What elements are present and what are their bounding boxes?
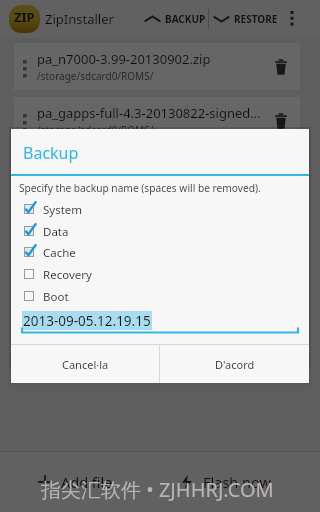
- button[interactable]: Flash now: [150, 452, 300, 512]
- staticText: /storage/sdcard0/ROMS/: [37, 69, 154, 83]
- staticText: System: [43, 202, 83, 218]
- staticText: Cancel·la: [62, 357, 109, 372]
- button[interactable]: pa_gapps-full-4.3-20130822-signed…: [14, 97, 300, 144]
- staticText: Specify the backup name (spaces will be …: [19, 181, 261, 195]
- button[interactable]: Boot: [11, 289, 309, 305]
- button[interactable]: Delete: [262, 43, 300, 90]
- button[interactable]: RESTORE: [209, 0, 282, 38]
- button[interactable]: BACKUP: [138, 0, 208, 38]
- button[interactable]: Data: [11, 224, 309, 240]
- staticText: BACKUP: [165, 12, 206, 26]
- staticText: ZipInstaller: [45, 10, 114, 28]
- staticText: Data: [43, 224, 69, 240]
- button[interactable]: Delete: [262, 97, 300, 144]
- staticText: /storage/sdcard0/ROMS/: [37, 123, 154, 137]
- staticText: D'acord: [215, 357, 255, 372]
- staticText: 指尖汇软件 • ZJHHRJ.COM: [41, 476, 274, 503]
- staticText: Add file: [61, 472, 113, 492]
- button[interactable]: Add file: [0, 452, 150, 512]
- staticText: pa_n7000-3.99-20130902.zip: [37, 50, 211, 68]
- button[interactable]: pa_n7000-3.99-20130902.zip: [14, 43, 300, 90]
- button[interactable]: System: [11, 202, 309, 218]
- button[interactable]: Cache: [11, 245, 309, 261]
- button[interactable]: More options: [282, 0, 302, 38]
- button[interactable]: D'acord: [160, 345, 309, 383]
- staticText: Recovery: [43, 267, 92, 283]
- staticText: RESTORE: [234, 12, 278, 26]
- staticText: ZIP: [14, 8, 35, 26]
- staticText: Boot: [43, 289, 69, 305]
- staticText: 2013-09-05.12.19.15: [23, 312, 151, 330]
- staticText: pa_gapps-full-4.3-20130822-signed…: [37, 104, 261, 122]
- staticText: Backup: [23, 142, 79, 164]
- button[interactable]: Recovery: [11, 267, 309, 283]
- staticText: Flash now: [203, 472, 271, 492]
- staticText: Cache: [43, 245, 76, 261]
- button[interactable]: Cancel·la: [11, 345, 159, 383]
